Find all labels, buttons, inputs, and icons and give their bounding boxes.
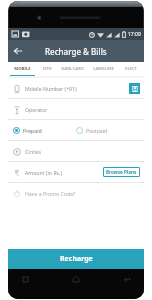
button[interactable]: Recent apps: [18, 272, 32, 286]
button[interactable]: ELECT: [118, 62, 144, 76]
staticText: Browse Plans: [106, 169, 137, 175]
staticText: Have a Promo Code?: [25, 190, 140, 197]
button[interactable]: Back: [8, 41, 28, 61]
staticText: ELECT: [125, 66, 137, 72]
staticText: LANDLINE: [93, 66, 114, 72]
staticText: Circles: [25, 148, 140, 155]
button[interactable]: Pick contact: [129, 83, 140, 94]
staticText: Prepaid: [23, 127, 42, 134]
staticText: DTH: [43, 66, 52, 72]
button[interactable]: Have a Promo Code?: [8, 183, 144, 203]
staticText: Recharge & Bills: [45, 46, 107, 57]
button[interactable]: Mobile Number (+91): [8, 78, 144, 98]
button[interactable]: MOBILE: [8, 62, 37, 76]
staticText: 17:09: [128, 31, 141, 38]
staticText: Postpaid: [86, 127, 108, 134]
button[interactable]: DATA CARD: [57, 62, 88, 76]
button[interactable]: Recharge: [8, 249, 144, 269]
button[interactable]: Operator: [8, 99, 144, 119]
staticText: Recharge: [60, 254, 93, 264]
button[interactable]: Amount (in Rs.): [8, 162, 144, 182]
staticText: Amount (in Rs.): [25, 169, 103, 176]
staticText: Operator: [25, 106, 140, 113]
button[interactable]: Prepaid: [13, 120, 76, 140]
button[interactable]: Home: [69, 272, 83, 286]
staticText: DATA CARD: [61, 66, 84, 72]
button[interactable]: Browse Plans: [103, 167, 140, 177]
staticText: MOBILE: [14, 66, 31, 72]
button[interactable]: Circles: [8, 141, 144, 161]
button[interactable]: Postpaid: [76, 120, 144, 140]
button[interactable]: Back: [120, 272, 134, 286]
staticText: Mobile Number (+91): [25, 85, 129, 92]
button[interactable]: LANDLINE: [88, 62, 118, 76]
button[interactable]: DTH: [37, 62, 57, 76]
